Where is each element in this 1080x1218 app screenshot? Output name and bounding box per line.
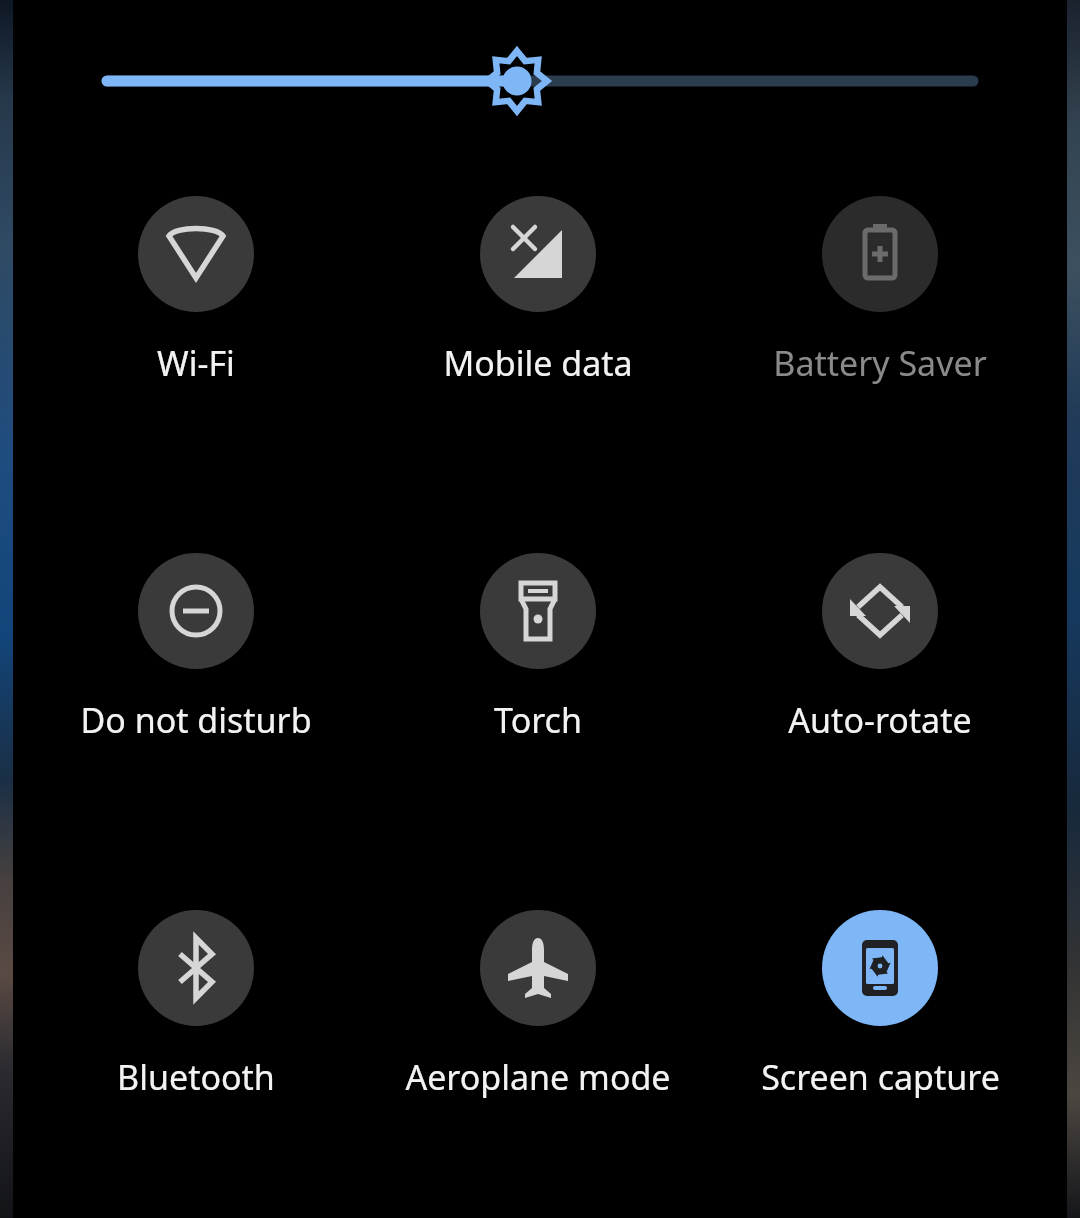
staticText: Battery Saver — [773, 340, 987, 386]
button[interactable]: Wi-Fi — [46, 180, 346, 386]
button[interactable]: Brightness — [90, 48, 990, 114]
button[interactable]: Auto-rotate — [730, 537, 1030, 743]
button[interactable]: Torch — [388, 537, 688, 743]
staticText: Wi-Fi — [157, 340, 235, 386]
button[interactable]: Aeroplane mode — [388, 894, 688, 1100]
staticText: Bluetooth — [117, 1054, 275, 1100]
staticText: Do not disturb — [80, 697, 312, 743]
button[interactable]: Mobile data — [388, 180, 688, 386]
button[interactable]: Bluetooth — [46, 894, 346, 1100]
staticText: Screen capture — [761, 1054, 1000, 1100]
staticText: Aeroplane mode — [405, 1054, 671, 1100]
button[interactable]: Battery Saver — [730, 180, 1030, 386]
button[interactable]: Do not disturb — [46, 537, 346, 743]
staticText: Mobile data — [443, 340, 633, 386]
staticText: Torch — [494, 697, 582, 743]
button[interactable]: Screen capture — [730, 894, 1030, 1100]
staticText: Auto-rotate — [788, 697, 972, 743]
